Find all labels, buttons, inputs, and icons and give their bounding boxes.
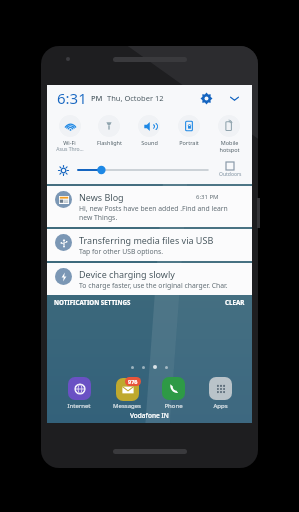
button[interactable]: Sound — [129, 113, 169, 148]
staticText: Transferring media files via USB — [79, 234, 214, 246]
staticText: 976 — [128, 378, 138, 385]
button[interactable]: Device charging slowly — [47, 263, 252, 295]
staticText: Outdoors — [219, 171, 242, 178]
staticText: NOTIFICATION SETTINGS — [54, 298, 131, 306]
staticText: PM — [91, 93, 103, 103]
staticText: News Blog — [79, 191, 124, 203]
staticText: Tap for other USB options. — [79, 247, 163, 256]
staticText: Vodafone IN — [130, 411, 169, 420]
staticText: CLEAR — [225, 298, 245, 306]
staticText: Internet — [67, 402, 91, 410]
staticText: Mobile hotspot — [219, 139, 240, 153]
button[interactable]: Settings — [196, 88, 216, 108]
staticText: Hi, new Posts have been added .Find and … — [79, 204, 228, 222]
staticText: Flashlight — [97, 139, 122, 146]
staticText: Messages — [113, 402, 141, 410]
button[interactable]: 976 — [103, 377, 150, 410]
staticText: Phone — [164, 402, 183, 410]
staticText: Sound — [141, 139, 158, 146]
staticText: 6:31 — [57, 88, 87, 108]
button[interactable]: Brightness slider — [78, 163, 208, 177]
button[interactable]: Flashlight — [89, 113, 129, 148]
staticText: To charge faster, use the original charg… — [79, 281, 228, 290]
button[interactable]: Mobile hotspot — [209, 113, 249, 155]
staticText: Thu, October 12 — [107, 93, 164, 103]
button[interactable]: CLEAR — [225, 298, 245, 306]
staticText: Wi-Fi — [63, 139, 76, 146]
button[interactable]: News Blog — [47, 186, 252, 227]
staticText: Device charging slowly — [79, 268, 175, 280]
button[interactable]: Apps — [197, 377, 244, 410]
button[interactable]: Transferring media files via USB — [47, 229, 252, 261]
staticText: Portrait — [179, 139, 199, 146]
staticText: Apps — [213, 402, 228, 410]
button[interactable]: Brightness — [56, 163, 70, 177]
button[interactable]: Outdoors — [214, 162, 246, 178]
button[interactable]: NOTIFICATION SETTINGS — [54, 298, 131, 306]
button[interactable]: Internet — [55, 377, 103, 410]
button[interactable]: Wi-Fi — [50, 113, 89, 155]
button[interactable]: Phone — [150, 377, 197, 410]
button[interactable]: Portrait — [169, 113, 209, 148]
staticText: 6:31 PM — [196, 193, 219, 201]
button[interactable]: Collapse — [224, 88, 244, 108]
staticText: Asus Thro... — [56, 146, 84, 153]
